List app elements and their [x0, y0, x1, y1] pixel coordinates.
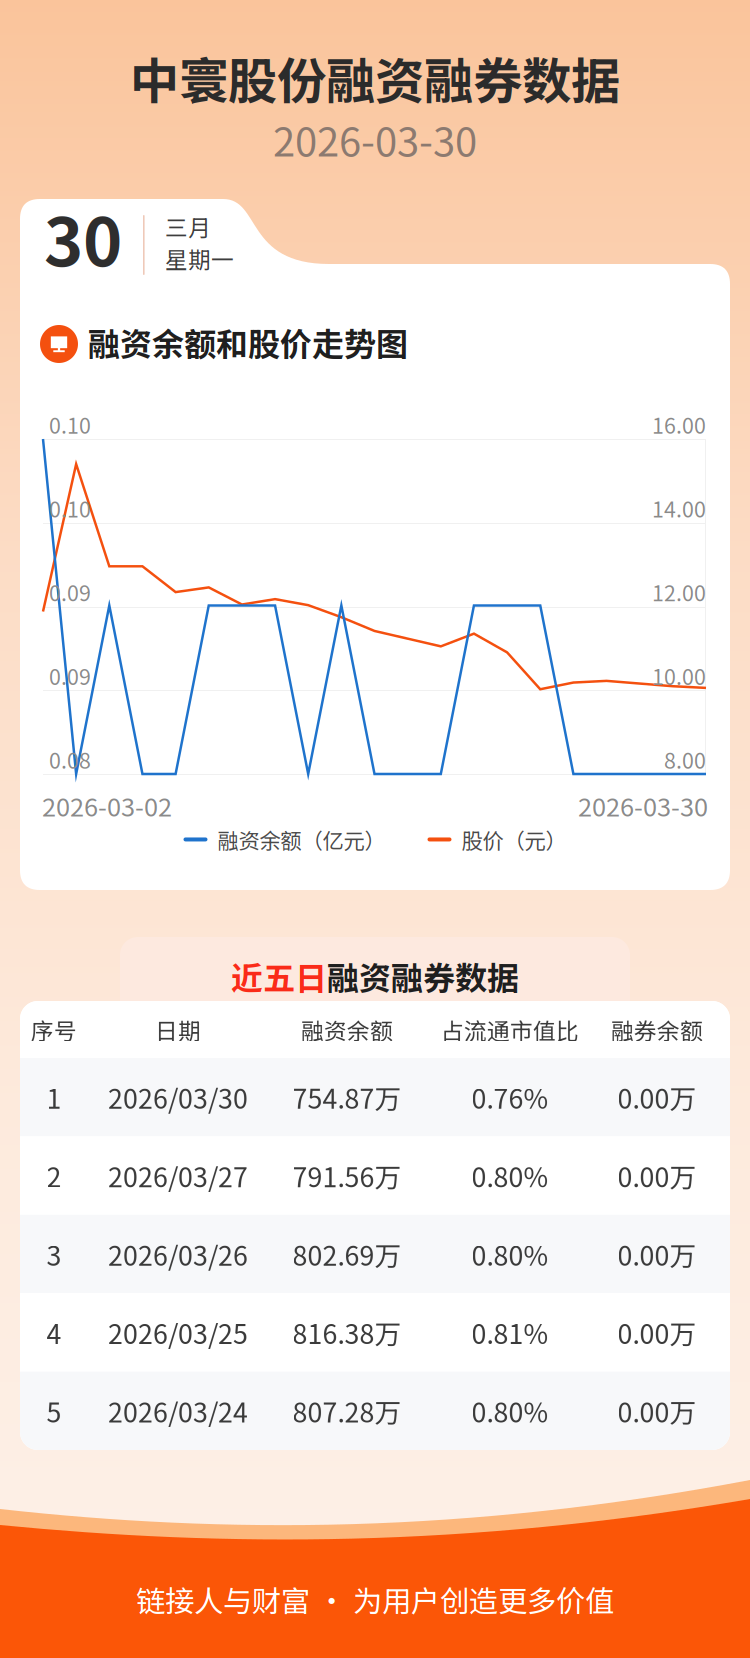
- staticText: 2026/03/24: [108, 1391, 248, 1430]
- staticText: 2026-03-30: [273, 110, 477, 168]
- staticText: 日期: [155, 1013, 201, 1046]
- staticText: 融资余额（亿元）: [217, 824, 385, 855]
- staticText: 2026-03-30: [578, 787, 708, 824]
- staticText: 10.00: [652, 660, 706, 691]
- staticText: 0.09: [49, 660, 91, 691]
- staticText: 序号: [31, 1013, 77, 1046]
- staticText: 802.69万: [292, 1235, 401, 1273]
- staticText: 0.80%: [471, 1391, 548, 1430]
- staticText: 中寰股份融资融券数据: [130, 42, 620, 113]
- staticText: 星期一: [165, 242, 234, 275]
- staticText: 816.38万: [292, 1313, 401, 1352]
- staticText: 三月: [165, 210, 211, 243]
- staticText: 16.00: [652, 409, 706, 440]
- staticText: 2026/03/30: [108, 1078, 248, 1116]
- staticText: 754.87万: [292, 1078, 401, 1116]
- staticText: 5: [46, 1391, 61, 1430]
- staticText: 0.00万: [617, 1313, 696, 1352]
- staticText: 近五日: [231, 953, 327, 999]
- staticText: 0.80%: [471, 1235, 548, 1273]
- staticText: 0.08: [49, 744, 91, 775]
- staticText: 融券余额: [611, 1013, 703, 1046]
- staticText: 2026/03/27: [108, 1156, 248, 1195]
- staticText: 791.56万: [292, 1156, 401, 1195]
- staticText: 0.09: [49, 576, 91, 607]
- staticText: 融资余额和股价走势图: [88, 319, 408, 365]
- staticText: 807.28万: [292, 1391, 401, 1430]
- staticText: 0.76%: [471, 1078, 548, 1116]
- staticText: 8.00: [664, 744, 706, 775]
- staticText: 1: [46, 1078, 61, 1116]
- staticText: 0.00万: [617, 1156, 696, 1195]
- staticText: 0.00万: [617, 1391, 696, 1430]
- staticText: 0.81%: [471, 1313, 548, 1352]
- staticText: 0.10: [49, 409, 91, 440]
- staticText: 0.80%: [471, 1156, 548, 1195]
- staticText: 3: [46, 1235, 61, 1273]
- staticText: 0.00万: [617, 1078, 696, 1116]
- staticText: 占流通市值比: [441, 1013, 579, 1046]
- staticText: 12.00: [652, 576, 706, 607]
- staticText: 30: [44, 189, 122, 285]
- staticText: 2: [46, 1156, 61, 1195]
- staticText: 融资融券数据: [327, 953, 519, 999]
- staticText: 链接人与财富 · 为用户创造更多价值: [136, 1578, 614, 1620]
- staticText: 2026/03/26: [108, 1235, 248, 1273]
- staticText: 2026-03-02: [42, 787, 172, 824]
- staticText: 4: [46, 1313, 61, 1352]
- staticText: 股价（元）: [461, 824, 566, 855]
- staticText: 0.10: [49, 493, 91, 524]
- staticText: 0.00万: [617, 1235, 696, 1273]
- staticText: 融资余额: [301, 1013, 393, 1046]
- staticText: 14.00: [652, 493, 706, 524]
- staticText: 2026/03/25: [108, 1313, 248, 1352]
